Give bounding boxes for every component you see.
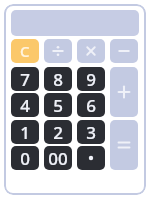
button[interactable]: Multiply	[77, 39, 105, 63]
button[interactable]: Decimal point	[77, 146, 105, 170]
button[interactable]: 4	[11, 93, 39, 117]
button[interactable]: Equals	[110, 120, 138, 170]
staticText: 1	[20, 121, 30, 144]
staticText: 00	[48, 147, 68, 170]
button[interactable]: 5	[44, 93, 72, 117]
button[interactable]: C	[11, 39, 39, 63]
staticText: 3	[86, 121, 96, 144]
staticText: 9	[86, 68, 96, 91]
button[interactable]: 0	[11, 146, 39, 170]
button[interactable]: 1	[11, 120, 39, 144]
staticText: C	[20, 41, 30, 61]
staticText: 5	[53, 94, 63, 117]
staticText: 4	[20, 94, 30, 117]
button[interactable]: 7	[11, 67, 39, 91]
button[interactable]: 9	[77, 67, 105, 91]
button[interactable]: Subtract	[110, 39, 138, 63]
button[interactable]: 3	[77, 120, 105, 144]
staticText: 2	[53, 121, 63, 144]
staticText: 8	[53, 68, 63, 91]
button[interactable]: Add	[110, 67, 138, 117]
staticText: 7	[20, 68, 30, 91]
button[interactable]: 2	[44, 120, 72, 144]
button[interactable]: 00	[44, 146, 72, 170]
button[interactable]: Divide	[44, 39, 72, 63]
button[interactable]: 8	[44, 67, 72, 91]
staticText: 0	[20, 147, 30, 170]
staticText: 6	[86, 94, 96, 117]
button[interactable]: 6	[77, 93, 105, 117]
